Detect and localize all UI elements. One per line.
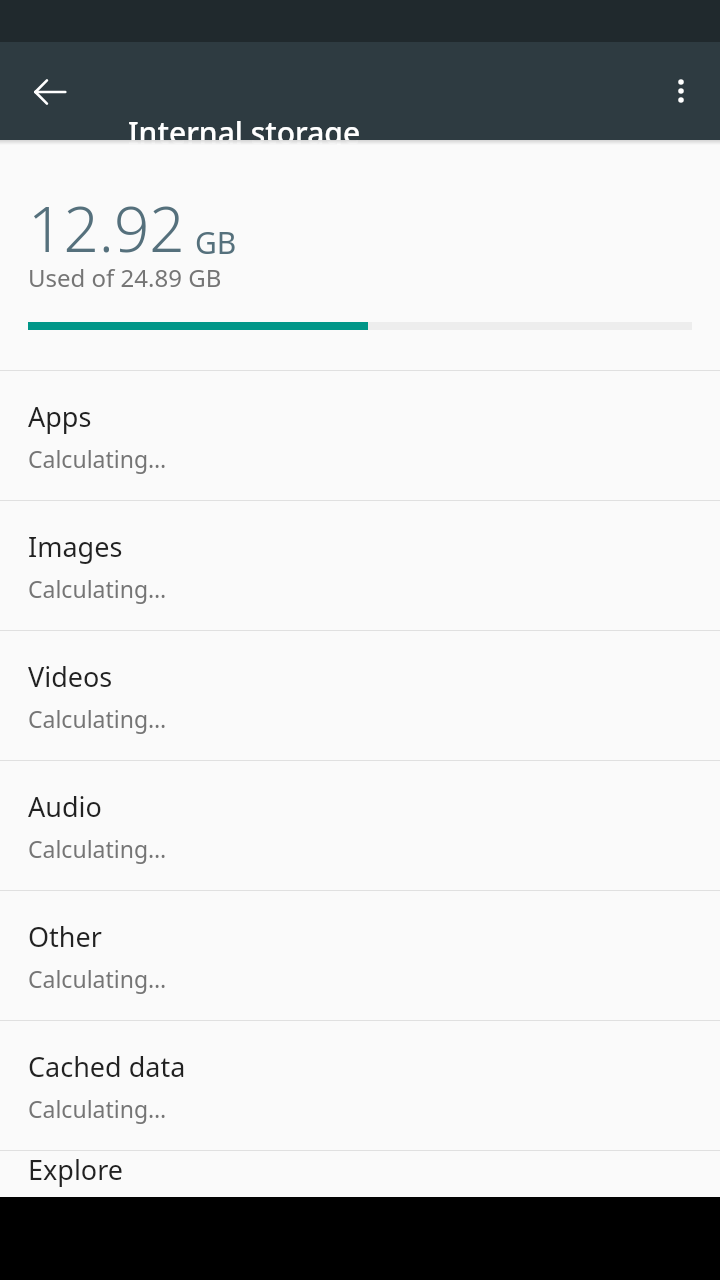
staticText: Calculating…: [28, 1093, 167, 1124]
staticText: Internal storage: [128, 112, 361, 153]
staticText: Calculating…: [28, 443, 167, 474]
staticText: 12.92: [28, 186, 185, 270]
staticText: Images: [28, 528, 123, 565]
staticText: Used of 24.89 GB: [28, 261, 222, 294]
button[interactable]: Apps: [0, 371, 720, 500]
button[interactable]: Videos: [0, 631, 720, 760]
button[interactable]: Cached data: [0, 1021, 720, 1150]
staticText: Calculating…: [28, 573, 167, 604]
staticText: Calculating…: [28, 963, 167, 994]
button[interactable]: Audio: [0, 761, 720, 890]
button[interactable]: Navigate up: [22, 64, 78, 120]
staticText: Explore: [28, 1151, 124, 1188]
button[interactable]: Images: [0, 501, 720, 630]
staticText: Other: [28, 918, 102, 955]
staticText: Cached data: [28, 1048, 186, 1085]
staticText: Audio: [28, 788, 102, 825]
staticText: Calculating…: [28, 703, 167, 734]
staticText: GB: [195, 222, 237, 263]
staticText: Apps: [28, 398, 92, 435]
button[interactable]: Explore: [0, 1151, 720, 1197]
staticText: Videos: [28, 658, 113, 695]
button[interactable]: More options: [653, 63, 709, 119]
staticText: Calculating…: [28, 833, 167, 864]
button[interactable]: Other: [0, 891, 720, 1020]
